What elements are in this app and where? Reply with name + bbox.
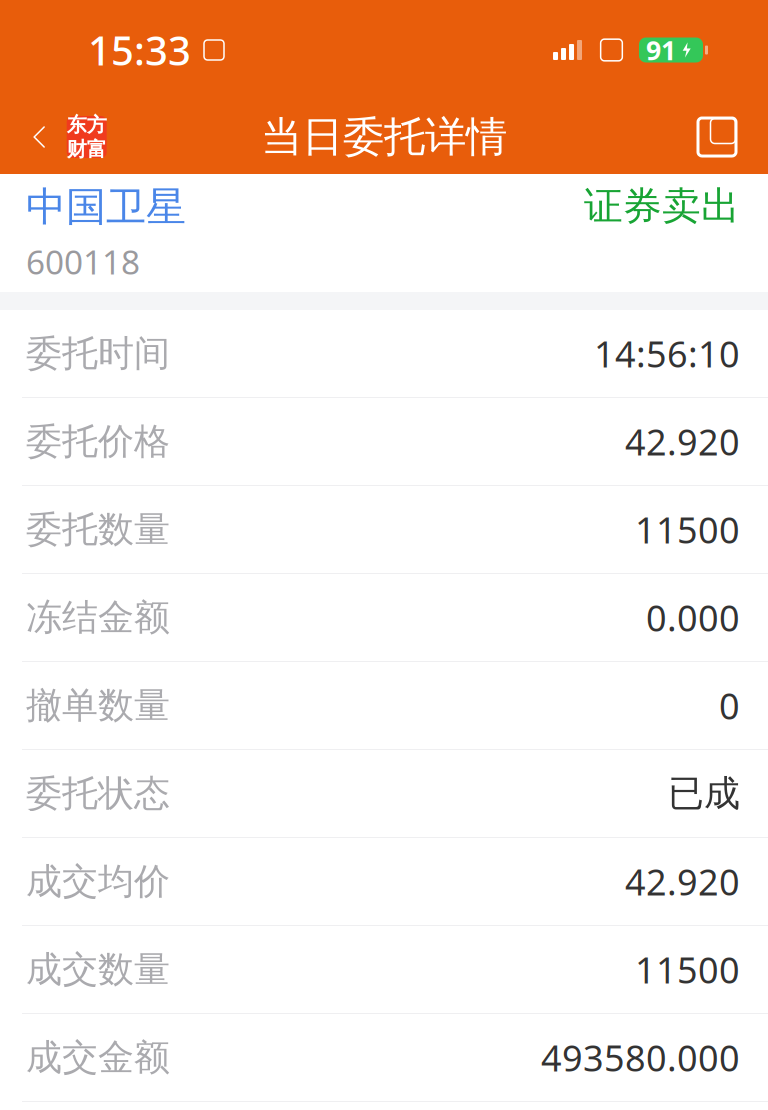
staticText: 15:33 <box>88 23 191 76</box>
staticText: 当日委托详情 <box>261 112 507 162</box>
staticText: 14:56:10 <box>594 330 740 377</box>
staticText: 成交均价 <box>26 859 170 904</box>
staticText: 11500 <box>635 506 740 553</box>
button[interactable]: 返回 东方财富 <box>0 100 121 174</box>
staticText: 493580.000 <box>541 1034 740 1081</box>
staticText: 中国卫星 <box>26 182 186 231</box>
staticText: 成交数量 <box>26 947 170 992</box>
staticText: 委托时间 <box>26 331 170 376</box>
staticText: 42.920 <box>625 418 740 465</box>
staticText: 委托状态 <box>26 771 170 816</box>
staticText: 已成 <box>668 771 740 816</box>
staticText: 撤单数量 <box>26 683 170 728</box>
staticText: 42.920 <box>625 858 740 905</box>
staticText: 委托价格 <box>26 419 170 464</box>
staticText: 证券卖出 <box>584 182 740 230</box>
staticText: 冻结金额 <box>26 595 170 640</box>
staticText: 财富 <box>67 137 107 162</box>
staticText: 91 <box>646 32 676 68</box>
staticText: 委托数量 <box>26 507 170 552</box>
button[interactable]: 分享 <box>682 100 752 174</box>
staticText: 东方 <box>67 112 107 137</box>
staticText: 600118 <box>26 239 140 284</box>
staticText: 0 <box>719 682 740 729</box>
staticText: 0.000 <box>646 594 740 641</box>
staticText: 成交金额 <box>26 1035 170 1080</box>
staticText: 11500 <box>635 946 740 993</box>
